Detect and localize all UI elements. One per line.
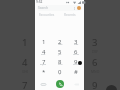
button[interactable]: Favourites [35, 12, 58, 18]
staticText: Search [38, 6, 49, 10]
staticText: TUV [58, 62, 63, 65]
staticText: 0 [58, 68, 62, 76]
button[interactable]: 0 [52, 68, 68, 78]
button[interactable]: 5 [52, 48, 68, 58]
button[interactable]: Search [37, 5, 82, 11]
button[interactable]: 9 [68, 58, 84, 68]
staticText: 7 [42, 58, 46, 66]
staticText: 6 [74, 48, 78, 56]
button[interactable]: 6 [68, 48, 84, 58]
button[interactable]: 3 [68, 38, 84, 48]
button[interactable]: Recents [58, 12, 81, 18]
other: More options [73, 7, 76, 10]
staticText: 1 [42, 38, 46, 46]
staticText: PQRS [40, 62, 47, 65]
staticText: 9 [74, 58, 78, 66]
staticText: 4 [42, 48, 46, 56]
staticText: 5 [58, 48, 62, 56]
staticText: * [42, 68, 46, 76]
button[interactable]: # [68, 68, 84, 78]
staticText: 2 [58, 38, 62, 46]
staticText: 4 [22, 56, 28, 69]
button[interactable]: 1 [35, 38, 52, 48]
staticText: WXYZ [73, 62, 80, 65]
staticText: GHI [41, 52, 46, 55]
staticText: 3 [74, 38, 78, 46]
button[interactable]: Account [77, 6, 81, 10]
staticText: MNO [73, 52, 79, 55]
staticText: + [59, 72, 61, 75]
staticText: JKL [58, 52, 62, 55]
staticText: 9 [92, 79, 98, 90]
staticText: 9:52 [36, 0, 43, 4]
staticText: 1 [22, 36, 28, 49]
staticText: # [74, 68, 78, 76]
button[interactable]: 8 [52, 58, 68, 68]
button[interactable]: 7 [35, 58, 52, 68]
staticText: Recents [64, 13, 76, 17]
button[interactable]: * [35, 68, 52, 78]
button[interactable]: 4 [35, 48, 52, 58]
staticText: 6 [92, 56, 98, 69]
button[interactable]: Hide keypad [35, 78, 52, 90]
staticText: DEF [74, 42, 79, 45]
button[interactable]: 2 [52, 38, 68, 48]
staticText: 3 [92, 36, 98, 49]
staticText: 7 [22, 79, 28, 90]
staticText: 8 [58, 58, 62, 66]
button[interactable]: Call [56, 80, 64, 88]
staticText: ABC [58, 42, 63, 45]
staticText: Favourites [39, 13, 55, 17]
